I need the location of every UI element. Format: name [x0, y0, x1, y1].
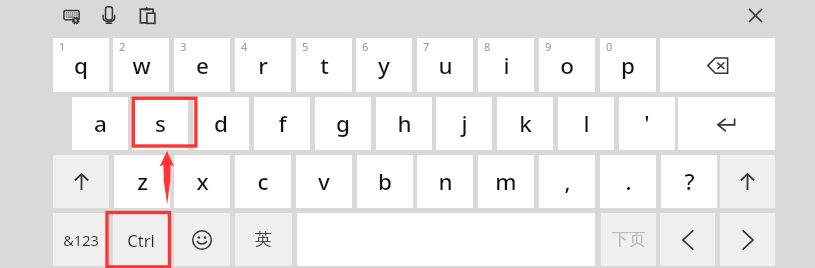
- button[interactable]: n: [417, 155, 473, 208]
- button[interactable]: o: [539, 38, 595, 92]
- staticText: 3: [180, 39, 187, 54]
- staticText: 7: [423, 39, 430, 54]
- staticText: 9: [545, 39, 552, 54]
- button[interactable]: Next page: [720, 213, 775, 266]
- staticText: b: [378, 166, 392, 197]
- button[interactable]: j: [436, 97, 492, 150]
- staticText: 1: [59, 39, 66, 54]
- button[interactable]: Backspace: [660, 38, 775, 92]
- button[interactable]: b: [357, 155, 413, 208]
- staticText: m: [495, 166, 517, 197]
- staticText: 下页: [612, 229, 646, 250]
- staticText: v: [318, 166, 330, 197]
- button[interactable]: Caps lock: [720, 155, 775, 208]
- button[interactable]: Shift: [53, 155, 109, 208]
- button[interactable]: ': [619, 97, 675, 150]
- button[interactable]: z: [114, 155, 170, 208]
- staticText: x: [196, 166, 209, 197]
- staticText: t: [320, 50, 329, 81]
- staticText: 0: [606, 39, 613, 54]
- staticText: y: [378, 50, 390, 81]
- button[interactable]: x: [174, 155, 230, 208]
- button[interactable]: Voice input: [98, 2, 122, 28]
- button[interactable]: 下页: [601, 213, 656, 266]
- staticText: k: [519, 108, 532, 139]
- button[interactable]: g: [315, 97, 371, 150]
- button[interactable]: &123: [53, 213, 109, 266]
- button[interactable]: l: [558, 97, 614, 150]
- button[interactable]: d: [193, 97, 249, 150]
- button[interactable]: p: [600, 38, 656, 92]
- button[interactable]: ?: [661, 155, 717, 208]
- button[interactable]: e: [174, 38, 230, 92]
- staticText: c: [257, 166, 269, 197]
- staticText: f: [278, 108, 287, 139]
- staticText: j: [461, 108, 468, 139]
- button[interactable]: Close keyboard: [741, 1, 770, 30]
- staticText: Ctrl: [127, 229, 155, 251]
- button[interactable]: Keyboard settings: [57, 2, 87, 30]
- staticText: h: [397, 108, 412, 139]
- button[interactable]: i: [478, 38, 534, 92]
- button[interactable]: c: [235, 155, 291, 208]
- staticText: p: [621, 50, 635, 81]
- button[interactable]: f: [254, 97, 310, 150]
- staticText: ?: [684, 166, 695, 197]
- button[interactable]: Clipboard: [136, 2, 160, 28]
- button[interactable]: v: [296, 155, 352, 208]
- staticText: 4: [241, 39, 248, 54]
- staticText: a: [94, 108, 107, 139]
- button[interactable]: Emoji: [174, 213, 230, 266]
- staticText: &123: [63, 230, 99, 250]
- staticText: s: [155, 108, 166, 139]
- staticText: i: [503, 50, 510, 81]
- staticText: u: [438, 50, 453, 81]
- button[interactable]: a: [72, 97, 128, 150]
- staticText: w: [132, 50, 151, 81]
- button[interactable]: m: [478, 155, 534, 208]
- button[interactable]: y: [356, 38, 412, 92]
- staticText: .: [625, 166, 632, 197]
- button[interactable]: k: [497, 97, 553, 150]
- staticText: r: [258, 50, 268, 81]
- button[interactable]: 英: [235, 213, 292, 266]
- button[interactable]: h: [376, 97, 432, 150]
- staticText: ': [644, 108, 650, 139]
- staticText: d: [214, 108, 228, 139]
- button[interactable]: ,: [539, 155, 595, 208]
- staticText: q: [74, 50, 88, 81]
- button[interactable]: Previous page: [660, 213, 715, 266]
- staticText: 5: [302, 39, 309, 54]
- button[interactable]: q: [53, 38, 109, 92]
- staticText: 6: [362, 39, 369, 54]
- button[interactable]: s: [132, 97, 188, 150]
- button[interactable]: u: [417, 38, 473, 92]
- staticText: 8: [484, 39, 491, 54]
- staticText: ,: [564, 166, 571, 197]
- button[interactable]: .: [600, 155, 656, 208]
- button[interactable]: w: [113, 38, 169, 92]
- staticText: n: [438, 166, 453, 197]
- staticText: l: [583, 108, 590, 139]
- staticText: z: [137, 166, 148, 197]
- staticText: 2: [119, 39, 126, 54]
- button[interactable]: Ctrl: [113, 213, 169, 266]
- staticText: g: [336, 108, 350, 139]
- staticText: o: [560, 50, 574, 81]
- button[interactable]: r: [235, 38, 291, 92]
- button[interactable]: Enter: [678, 97, 775, 150]
- button[interactable]: t: [296, 38, 352, 92]
- staticText: e: [196, 50, 209, 81]
- staticText: 英: [255, 229, 272, 250]
